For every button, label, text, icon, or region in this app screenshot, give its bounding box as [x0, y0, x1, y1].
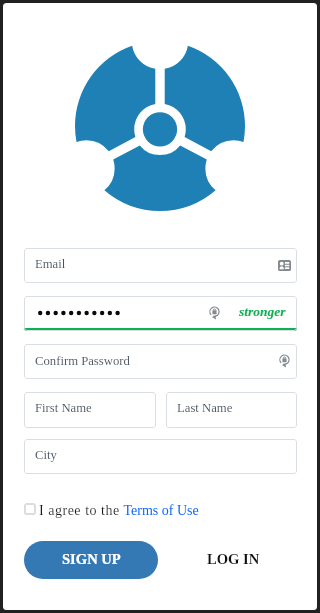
button[interactable]: SIGN UP — [24, 541, 158, 579]
staticText: LOG IN — [207, 551, 260, 567]
button[interactable]: LOG IN — [196, 541, 271, 579]
staticText: Last Name — [177, 401, 233, 415]
staticText: City — [35, 448, 57, 462]
staticText: I agree to the Terms of Use — [39, 503, 199, 519]
staticText: Email — [35, 257, 66, 271]
other: App logo — [75, 41, 245, 211]
button[interactable]: Email — [24, 248, 297, 283]
button[interactable]: I agree to the Terms of Use — [24, 501, 184, 519]
button[interactable]: First Name — [24, 392, 156, 428]
staticText: SIGN UP — [62, 551, 121, 567]
button[interactable]: City — [24, 439, 297, 474]
button[interactable]: Confirm Password — [24, 344, 297, 379]
staticText: stronger — [239, 304, 286, 319]
button[interactable]: Last Name — [166, 392, 297, 428]
other: Reset password — [209, 306, 220, 319]
button[interactable]: Reset password — [24, 296, 297, 331]
other: Reset password — [279, 354, 290, 367]
staticText: First Name — [35, 401, 92, 415]
staticText: Confirm Password — [35, 354, 130, 368]
